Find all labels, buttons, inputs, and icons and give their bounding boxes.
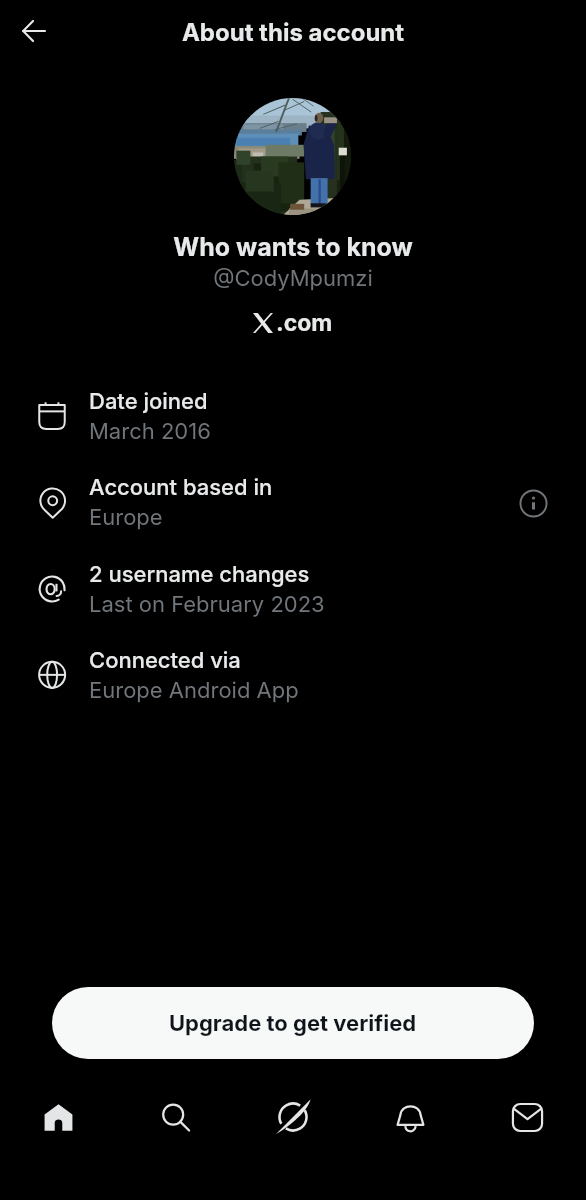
button[interactable]: Messages	[469, 1087, 586, 1147]
button[interactable]: Home	[0, 1087, 117, 1147]
staticText: Date joined	[89, 388, 208, 415]
button[interactable]: More info	[513, 483, 553, 523]
staticText: Europe	[89, 504, 163, 531]
staticText: Who wants to know	[0, 232, 586, 262]
button[interactable]: Grok	[234, 1087, 351, 1147]
button[interactable]: Upgrade to get verified	[52, 987, 534, 1059]
button[interactable]: Notifications	[352, 1087, 469, 1147]
staticText: About this account	[0, 18, 586, 47]
button[interactable]: Connected via	[0, 645, 586, 731]
staticText: @CodyMpumzi	[0, 265, 586, 292]
button[interactable]: Account based in	[0, 472, 586, 558]
staticText: March 2016	[89, 418, 211, 445]
button[interactable]: 2 username changes	[0, 559, 586, 645]
button[interactable]: Date joined	[0, 386, 586, 472]
staticText: Upgrade to get verified	[169, 1010, 417, 1037]
staticText: Account based in	[89, 474, 273, 501]
staticText: Connected via	[89, 647, 241, 674]
button[interactable]: Search	[117, 1087, 234, 1147]
staticText: 2 username changes	[89, 561, 310, 588]
staticText: .com	[276, 309, 333, 337]
staticText: Europe Android App	[89, 677, 299, 704]
button[interactable]: Back	[12, 9, 56, 53]
staticText: Last on February 2023	[89, 591, 325, 618]
